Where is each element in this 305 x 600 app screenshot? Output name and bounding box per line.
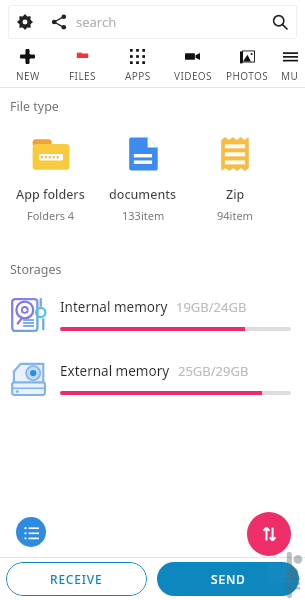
button[interactable]: RECEIVE	[6, 562, 147, 596]
staticText: FILES	[69, 69, 96, 83]
button[interactable]: Internal memory	[0, 294, 305, 336]
staticText: 19GB/24GB	[176, 298, 247, 316]
button[interactable]: APPS	[110, 43, 165, 87]
button[interactable]: VIDEOS	[165, 43, 220, 87]
staticText: 25GB/29GB	[178, 362, 249, 380]
button[interactable]: MU	[275, 43, 305, 87]
button[interactable]: search	[76, 5, 263, 39]
staticText: MU	[281, 69, 299, 83]
button[interactable]: External memory	[0, 358, 305, 400]
staticText: 133item	[122, 208, 165, 223]
button[interactable]: FILES	[55, 43, 110, 87]
staticText: RECEIVE	[50, 571, 103, 587]
staticText: App folders	[16, 186, 85, 203]
staticText: 94item	[217, 208, 253, 223]
button[interactable]: Share	[42, 5, 76, 39]
button[interactable]: PHOTOS	[220, 43, 275, 87]
button[interactable]: NEW	[0, 43, 55, 87]
button[interactable]: App folders	[4, 129, 97, 225]
staticText: documents	[109, 186, 177, 203]
button[interactable]: Search	[263, 5, 297, 39]
staticText: Zip	[226, 186, 245, 203]
staticText: Storages	[10, 261, 62, 278]
staticText: VIDEOS	[174, 69, 212, 83]
button[interactable]: Settings	[8, 5, 42, 39]
button[interactable]: Zip	[189, 129, 281, 225]
staticText: search	[76, 13, 117, 31]
button[interactable]: SEND	[157, 562, 299, 596]
staticText: APPS	[125, 69, 151, 83]
staticText: PHOTOS	[226, 69, 269, 83]
button[interactable]: Transfer	[247, 512, 291, 556]
staticText: NEW	[16, 69, 40, 83]
staticText: Folders 4	[27, 208, 75, 223]
staticText: File type	[10, 98, 59, 115]
button[interactable]: documents	[97, 129, 189, 225]
staticText: Internal memory	[60, 298, 168, 316]
staticText: External memory	[60, 362, 170, 380]
staticText: SEND	[211, 571, 246, 587]
button[interactable]: List view	[16, 517, 46, 547]
